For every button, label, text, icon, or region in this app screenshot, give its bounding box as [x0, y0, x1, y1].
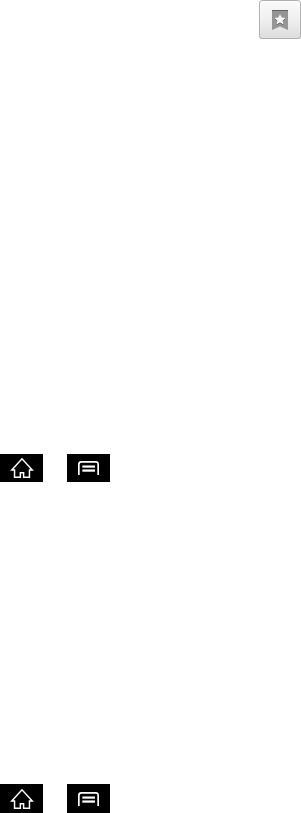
button[interactable]: Table of contents	[67, 454, 110, 482]
button[interactable]: Home	[0, 454, 43, 482]
button[interactable]: Home	[0, 784, 43, 813]
button[interactable]: Bookmark this page	[259, 0, 301, 39]
button[interactable]: Table of contents	[67, 784, 110, 813]
